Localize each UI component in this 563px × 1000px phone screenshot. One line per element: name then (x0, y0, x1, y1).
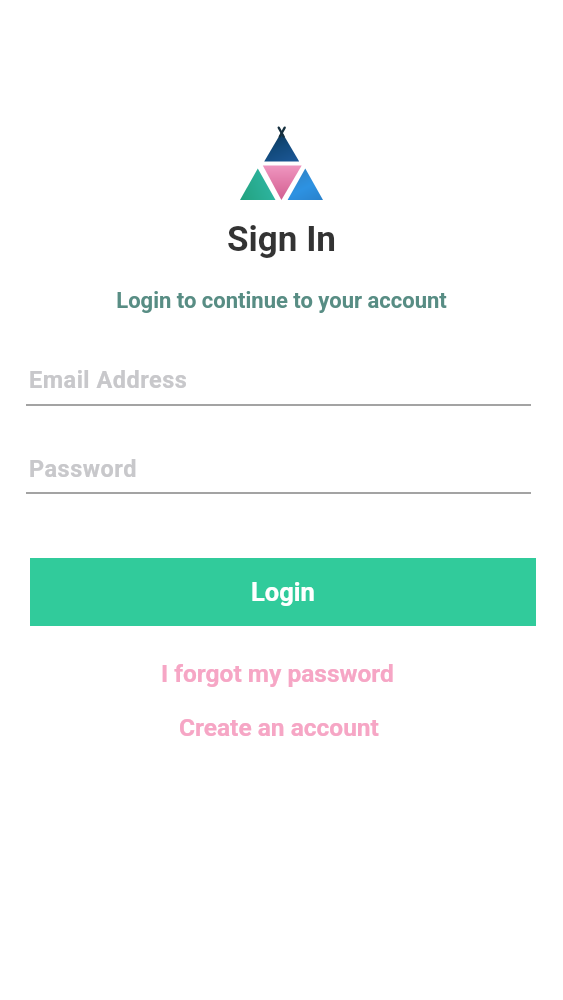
staticText: Email Address (29, 366, 188, 394)
staticText: Sign In (0, 219, 563, 260)
other: App logo (234, 122, 330, 206)
button[interactable]: I forgot my password (0, 653, 559, 693)
staticText: I forgot my password (161, 659, 394, 688)
button[interactable]: Password (26, 440, 531, 494)
button[interactable]: Email Address (26, 352, 531, 406)
staticText: Login (251, 577, 315, 607)
button[interactable]: Create an account (0, 707, 560, 747)
button[interactable]: Login (30, 558, 536, 626)
staticText: Password (29, 455, 137, 483)
staticText: Login to continue to your account (0, 288, 563, 314)
staticText: Create an account (179, 713, 379, 742)
